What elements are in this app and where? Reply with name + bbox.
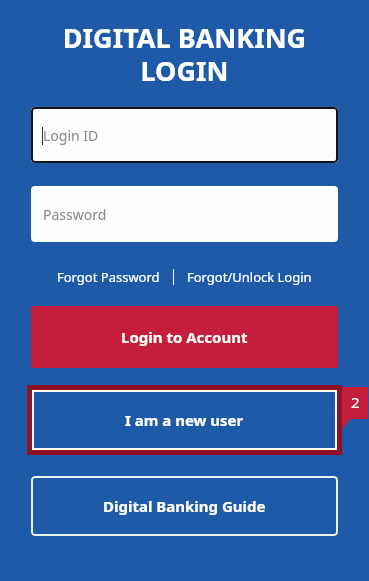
staticText: Password: [43, 205, 107, 224]
staticText: 2: [351, 392, 360, 412]
staticText: Forgot Password: [57, 268, 160, 286]
staticText: I am a new user: [125, 410, 244, 430]
button[interactable]: I am a new user: [32, 390, 337, 450]
staticText: Login to Account: [121, 327, 248, 347]
other: 2 notifications: [342, 387, 368, 429]
button[interactable]: Login ID: [31, 107, 338, 163]
button[interactable]: Digital Banking Guide: [31, 476, 338, 536]
staticText: Digital Banking Guide: [103, 496, 266, 516]
button[interactable]: Login to Account: [31, 306, 338, 368]
staticText: DIGITAL BANKING LOGIN: [12, 19, 357, 89]
staticText: Forgot/Unlock Login: [187, 268, 312, 286]
button[interactable]: Forgot Password: [53, 265, 164, 289]
button[interactable]: Forgot/Unlock Login: [183, 265, 316, 289]
button[interactable]: Password: [31, 186, 338, 242]
staticText: Login ID: [43, 126, 99, 145]
